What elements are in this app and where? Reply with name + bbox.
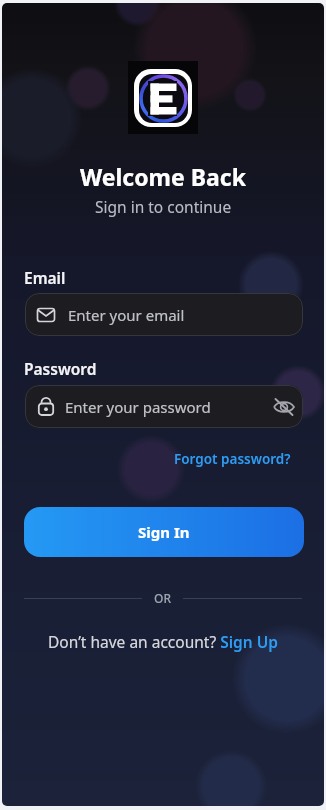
button[interactable]: Don’t have an account? Sign Up	[48, 631, 278, 652]
staticText: Don’t have an account? Sign Up	[48, 631, 278, 652]
staticText: Welcome Back	[80, 161, 246, 192]
button[interactable]: Forgot password?	[174, 450, 291, 468]
staticText: Sign In	[138, 522, 190, 542]
staticText: OR	[154, 590, 171, 606]
staticText: Enter your email	[68, 305, 185, 325]
staticText: Enter your password	[65, 397, 211, 417]
button[interactable]	[273, 398, 295, 416]
staticText: Email	[24, 267, 66, 288]
staticText: Sign in to continue	[95, 196, 232, 217]
button[interactable]: Enter your password	[25, 385, 303, 428]
staticText: Password	[24, 358, 97, 379]
staticText: Forgot password?	[174, 450, 291, 468]
button[interactable]: Enter your email	[25, 293, 303, 336]
button[interactable]: Sign In	[24, 507, 304, 557]
